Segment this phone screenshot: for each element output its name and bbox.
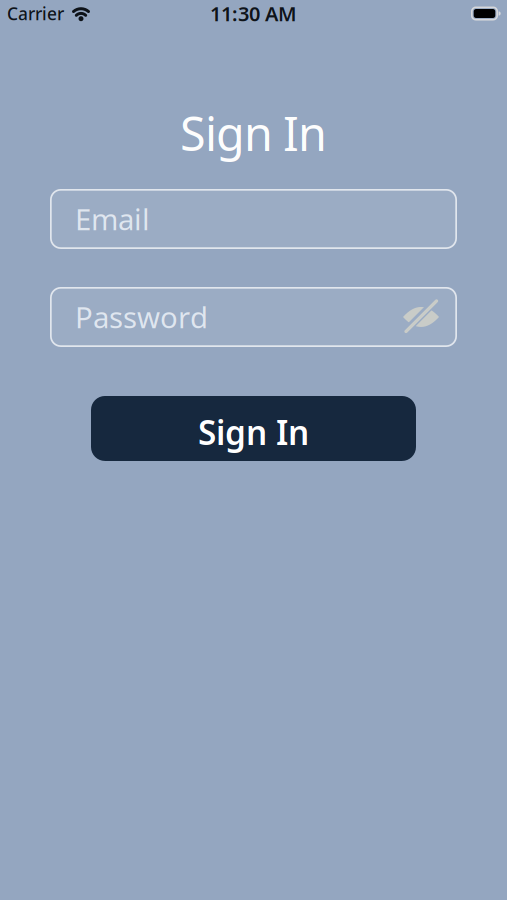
staticText: Sign In bbox=[180, 102, 327, 164]
staticText: Email bbox=[75, 199, 150, 238]
staticText: Password bbox=[75, 297, 208, 336]
staticText: Sign In bbox=[198, 410, 309, 454]
staticText: Carrier bbox=[7, 2, 64, 25]
staticText: 11:30 AM bbox=[210, 0, 297, 27]
button[interactable]: Sign In bbox=[91, 396, 416, 461]
button[interactable]: Password bbox=[50, 287, 457, 347]
button[interactable]: Email bbox=[50, 189, 457, 249]
button[interactable]: Show password bbox=[402, 300, 440, 333]
